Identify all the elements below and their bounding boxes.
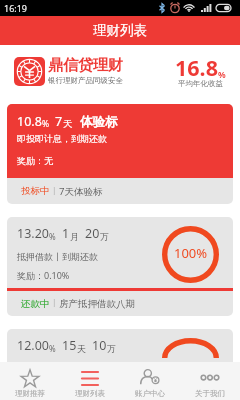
staticText: 丨 — [50, 298, 59, 309]
staticText: 账户中心 — [135, 389, 165, 398]
staticText: 即投即计息，到期还款 — [17, 133, 107, 144]
staticText: 7天体验标 — [59, 185, 103, 198]
staticText: 天 — [77, 343, 86, 354]
staticText: 月 — [70, 231, 79, 242]
staticText: % — [42, 118, 50, 130]
staticText: % — [218, 69, 226, 81]
staticText: 抵押借款丨到期还款 — [17, 251, 98, 262]
button[interactable]: 10.8 — [7, 104, 233, 204]
staticText: 关于我们 — [195, 389, 225, 398]
staticText: 还款中 — [21, 298, 50, 310]
staticText: 鼎信贷理财 — [48, 56, 123, 75]
button[interactable]: 理财推荐 — [0, 362, 60, 400]
staticText: 投标中 — [21, 185, 50, 197]
staticText: 1 — [62, 225, 70, 242]
staticText: 15 — [62, 337, 77, 354]
staticText: 10 — [92, 337, 107, 354]
staticText: 奖励：0.10% — [17, 269, 70, 281]
staticText: 理财推荐 — [15, 389, 45, 398]
staticText: 理财列表 — [75, 389, 105, 398]
staticText: % — [49, 231, 56, 242]
staticText: 平均年化收益 — [178, 79, 223, 88]
staticText: 12.00 — [17, 337, 49, 354]
staticText: 16:19 — [4, 2, 28, 14]
button[interactable]: 关于我们 — [180, 362, 240, 400]
button[interactable]: 13.20 — [7, 217, 233, 316]
staticText: 体验标 — [80, 114, 118, 130]
staticText: 银行理财产品同级安全 — [48, 76, 123, 85]
staticText: 20 — [85, 225, 100, 242]
staticText: 16.8 — [175, 53, 218, 82]
staticText: 7 — [55, 113, 63, 130]
staticText: 万 — [100, 231, 109, 242]
button[interactable]: 理财列表 — [60, 362, 120, 400]
staticText: 理财列表 — [93, 22, 147, 39]
staticText: 天 — [63, 118, 73, 130]
staticText: 奖励：无 — [17, 155, 53, 166]
staticText: 房产抵押借款八期 — [59, 298, 135, 310]
staticText: 13.20 — [17, 225, 49, 242]
staticText: 丨 — [50, 186, 59, 197]
button[interactable]: 账户中心 — [120, 362, 180, 400]
staticText: 100% — [174, 244, 208, 262]
staticText: % — [49, 343, 56, 354]
staticText: 万 — [107, 343, 116, 354]
staticText: 10.8 — [17, 113, 42, 130]
button[interactable]: 12.00 — [7, 329, 233, 369]
